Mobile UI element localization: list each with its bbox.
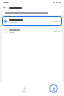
button[interactable]: [2, 27, 62, 35]
button[interactable]: Upload: [20, 86, 28, 93]
button[interactable]: [2, 16, 62, 26]
button[interactable]: Upload file: [49, 84, 58, 93]
button[interactable]: Back: [2, 5, 7, 10]
